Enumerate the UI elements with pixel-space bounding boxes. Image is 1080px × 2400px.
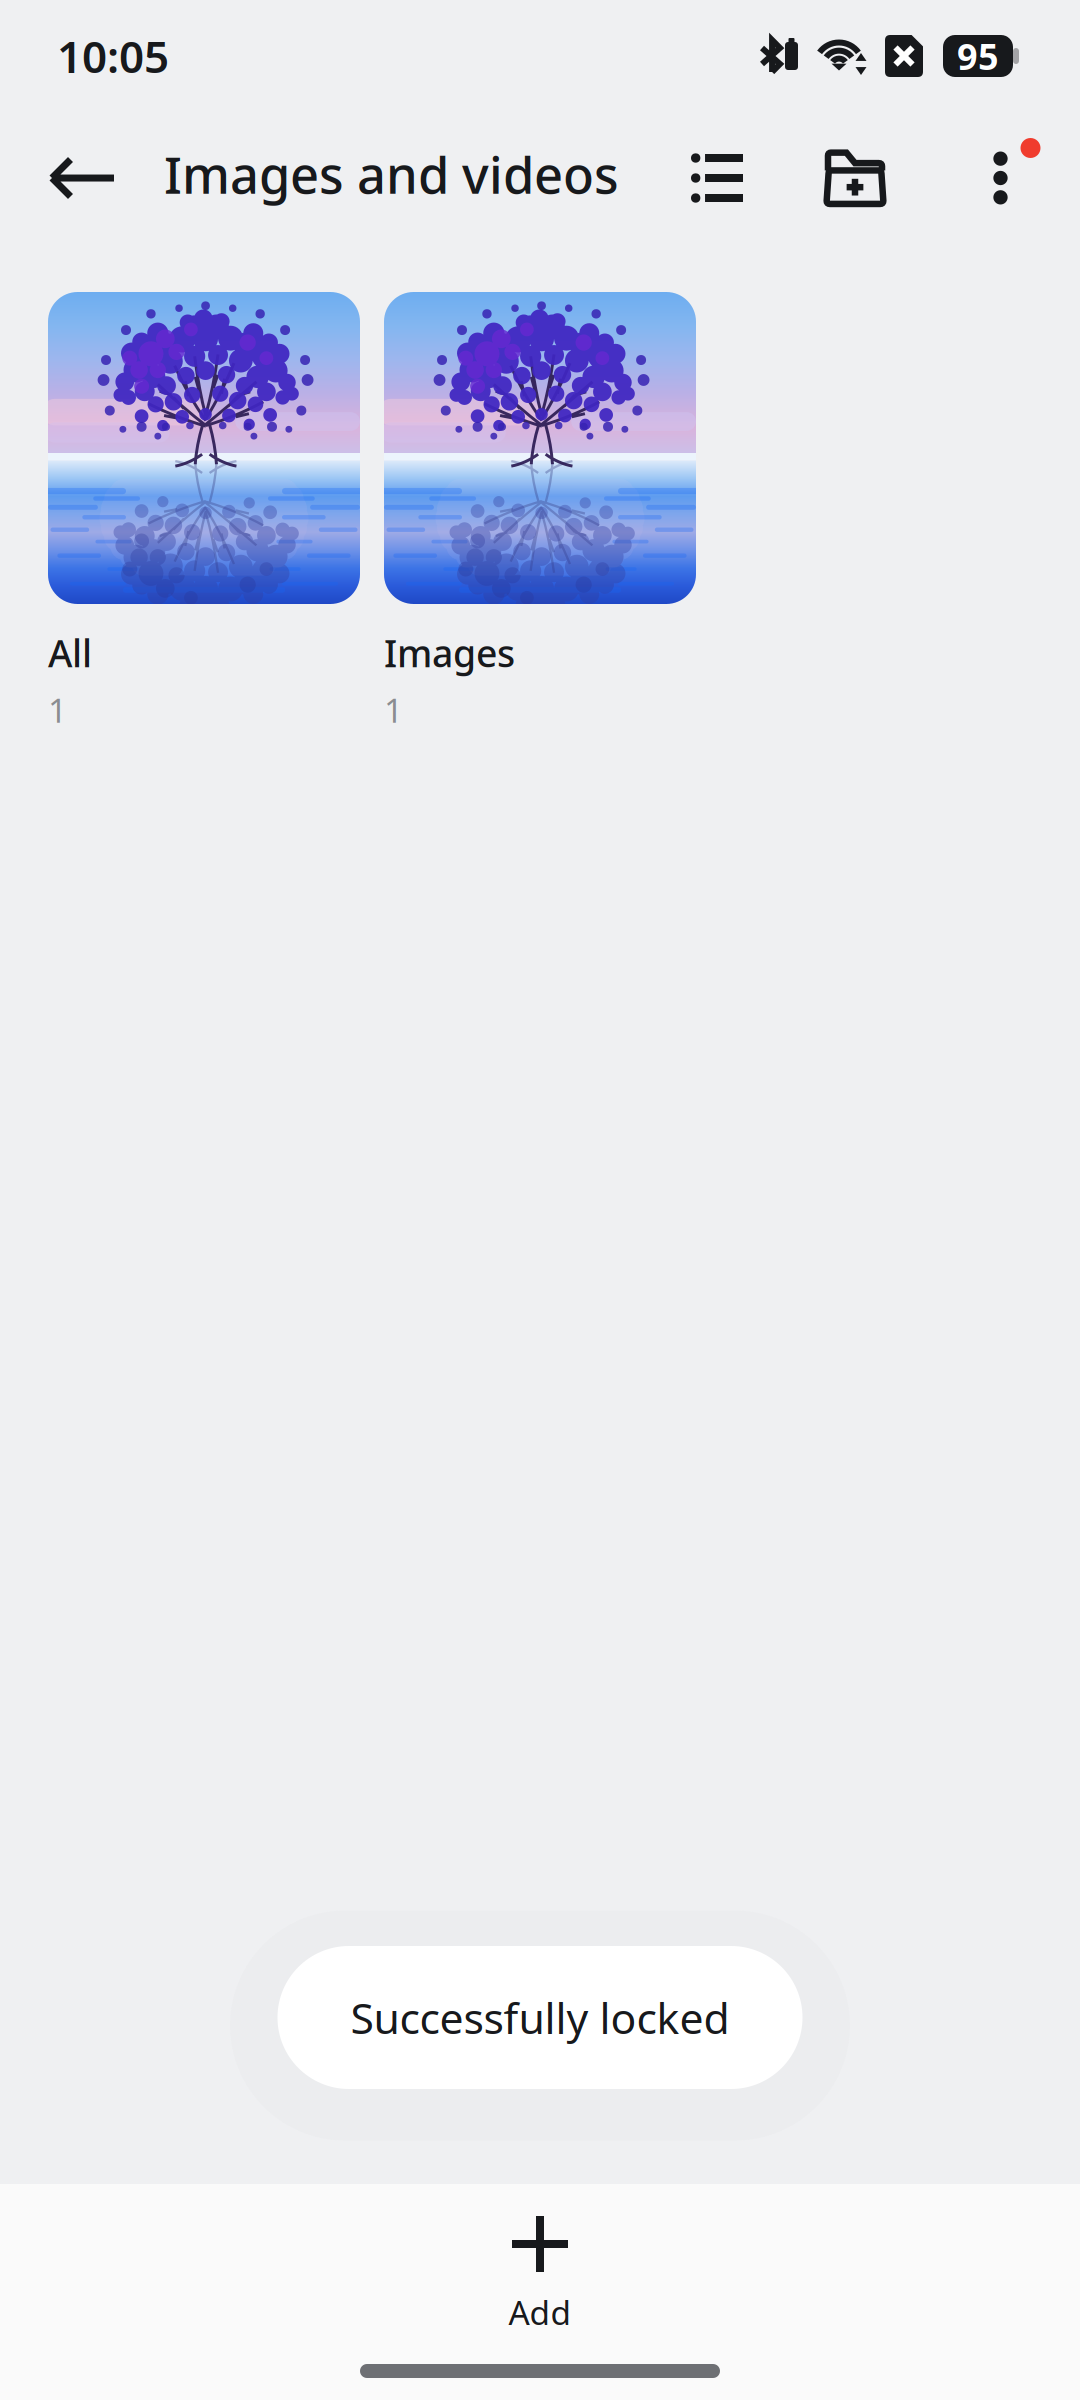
staticText: Successfully locked [350, 1989, 729, 2046]
button[interactable]: Add [0, 2184, 1080, 2348]
staticText: 1 [384, 688, 403, 732]
staticText: 10:05 [57, 27, 169, 85]
staticText: 1 [48, 688, 67, 732]
button[interactable]: More options [961, 123, 1040, 232]
staticText: Images and videos [164, 140, 619, 208]
button[interactable]: New folder [804, 125, 906, 231]
button[interactable]: Back [30, 124, 136, 232]
button[interactable]: Images [384, 292, 696, 732]
button[interactable]: All [48, 292, 360, 732]
staticText: All [48, 628, 92, 678]
button[interactable]: View options [665, 126, 769, 230]
staticText: Add [508, 2290, 571, 2334]
staticText: 95 [957, 32, 999, 80]
staticText: Images [384, 628, 515, 678]
